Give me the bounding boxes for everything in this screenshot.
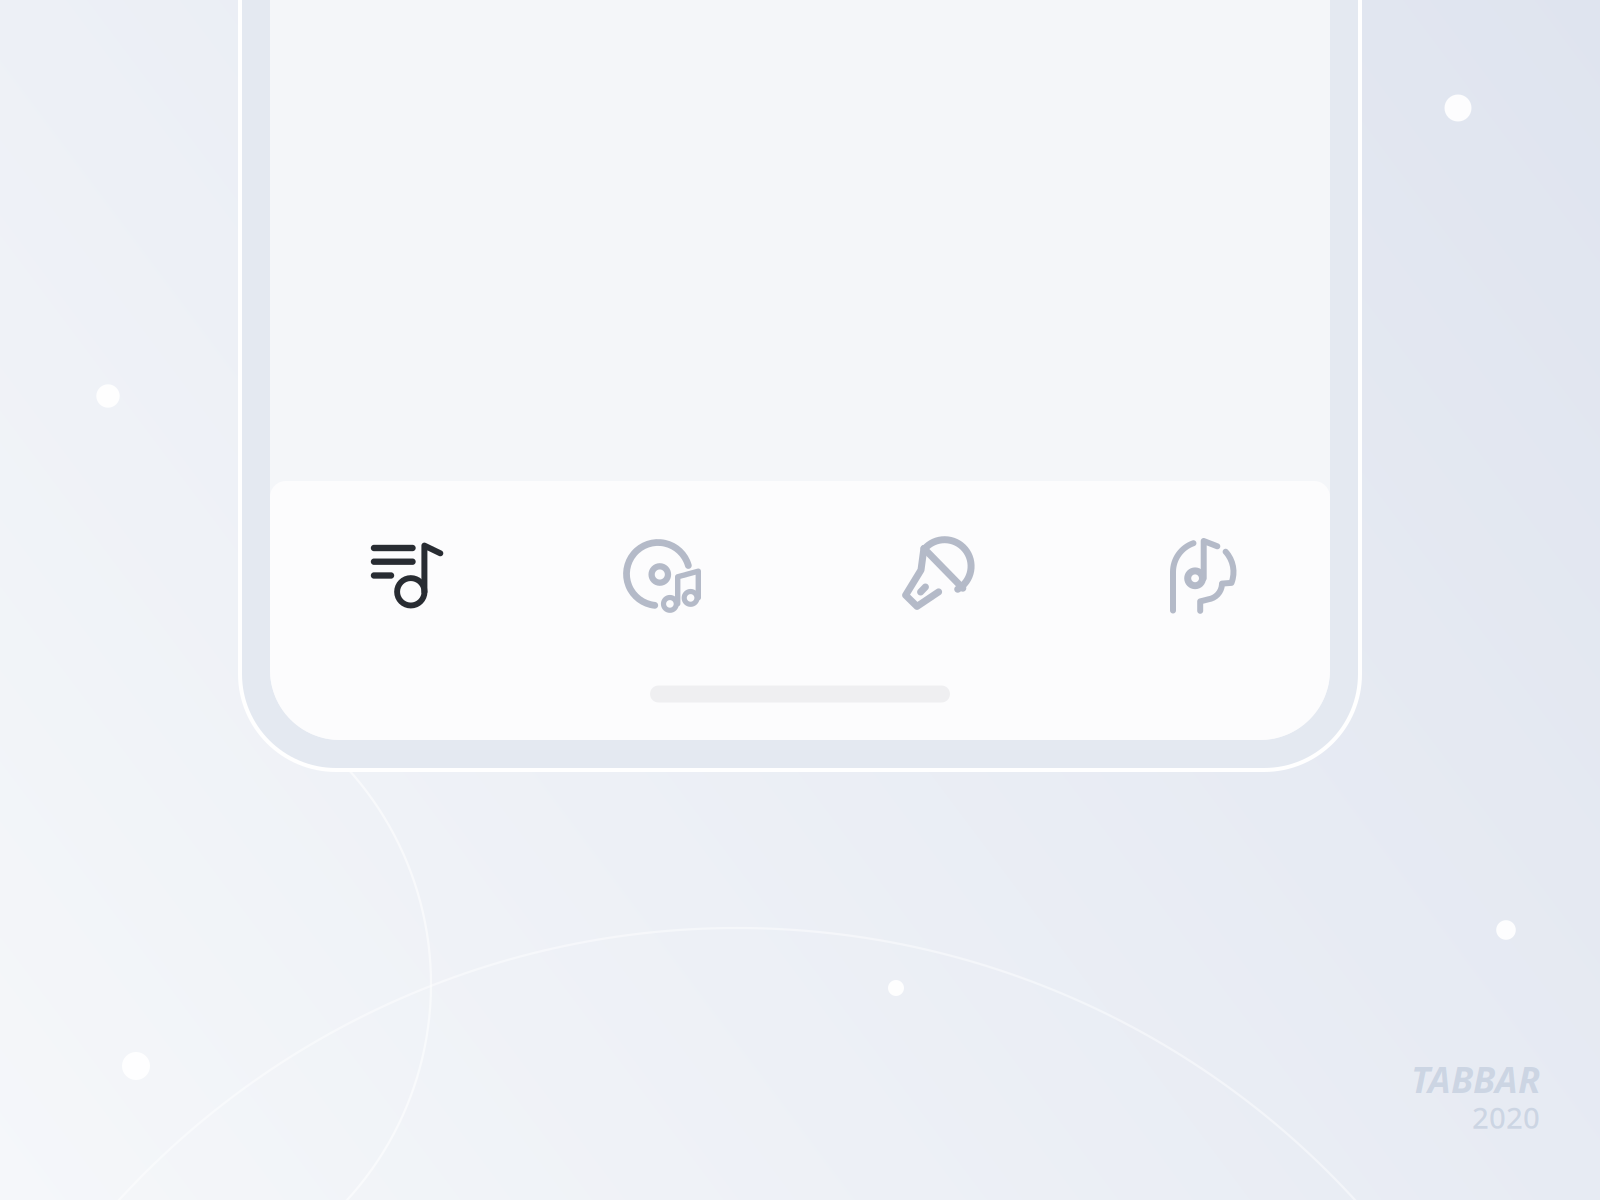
button[interactable]: Karaoke — [883, 523, 983, 623]
button[interactable]: Playlist — [355, 523, 455, 623]
button[interactable]: Albums — [610, 523, 710, 623]
button[interactable]: Radio — [1152, 523, 1252, 623]
staticText: 2020 — [1472, 1098, 1540, 1137]
staticText: TABBAR — [1411, 1055, 1540, 1103]
